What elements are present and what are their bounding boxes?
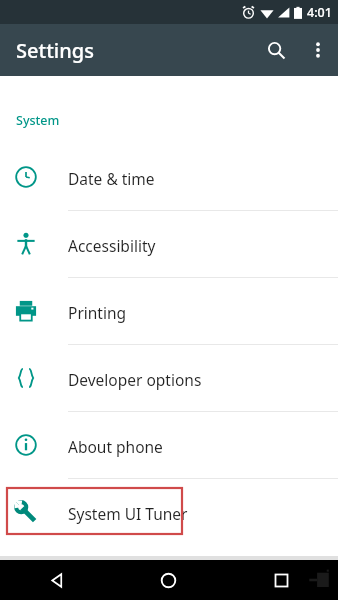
staticText: Printing bbox=[68, 302, 127, 323]
button[interactable]: Accessibility bbox=[0, 211, 338, 278]
button[interactable]: Recent apps bbox=[225, 560, 338, 600]
button[interactable]: Date & time bbox=[0, 144, 338, 211]
staticText: System bbox=[16, 112, 60, 129]
button[interactable]: Printing bbox=[0, 278, 338, 345]
staticText: System UI Tuner bbox=[68, 503, 188, 524]
staticText: About phone bbox=[68, 436, 163, 457]
staticText: Date & time bbox=[68, 168, 155, 189]
button[interactable]: Search bbox=[254, 28, 298, 72]
staticText: Settings bbox=[16, 37, 94, 64]
staticText: Accessibility bbox=[68, 235, 156, 256]
button[interactable]: System UI Tuner bbox=[0, 479, 338, 546]
button[interactable]: About phone bbox=[0, 412, 338, 479]
staticText: 4:01 bbox=[307, 4, 332, 21]
button[interactable]: More options bbox=[298, 30, 338, 70]
button[interactable]: Back bbox=[0, 560, 112, 600]
staticText: Developer options bbox=[68, 369, 202, 390]
button[interactable]: Home bbox=[112, 560, 225, 600]
button[interactable]: Developer options bbox=[0, 345, 338, 412]
